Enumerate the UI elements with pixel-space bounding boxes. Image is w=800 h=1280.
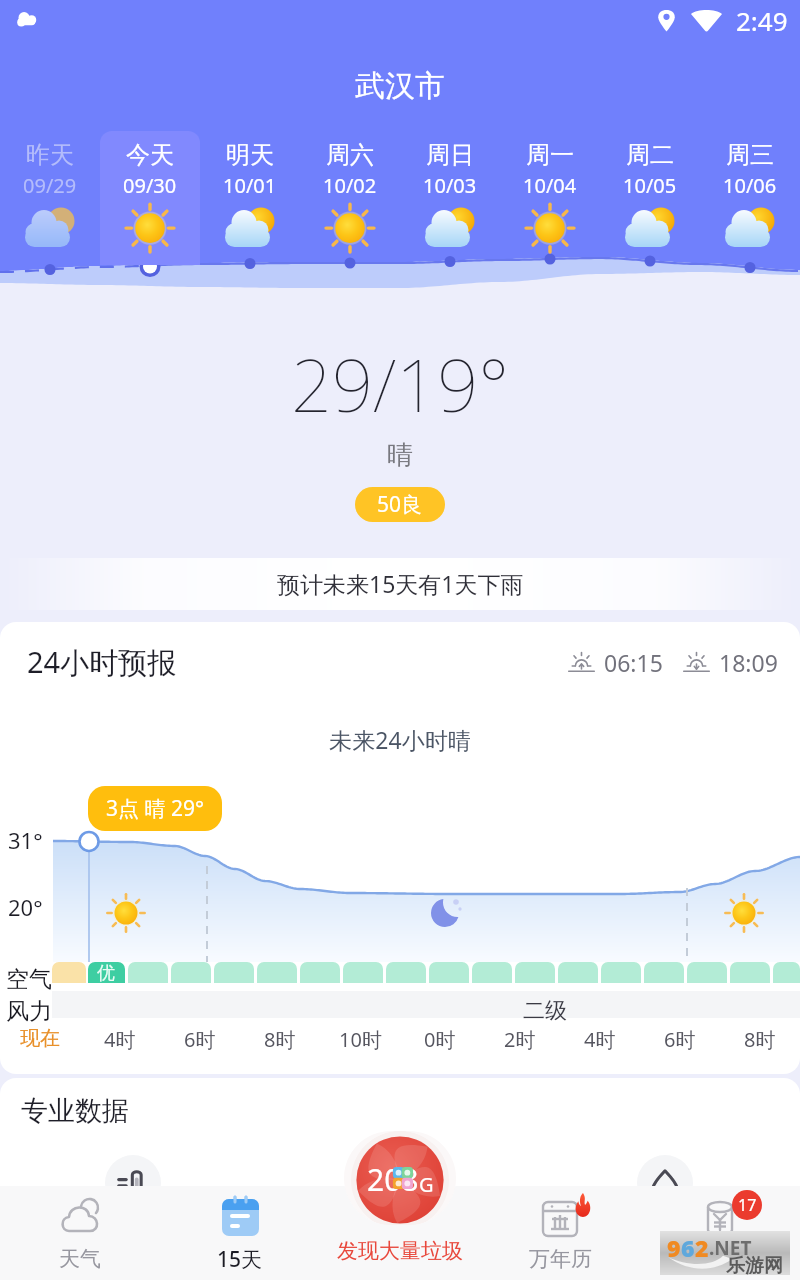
staticText: 10时	[339, 1026, 382, 1053]
staticText: 昨天	[26, 140, 74, 170]
staticText: 2时	[504, 1026, 536, 1053]
staticText: 9	[667, 1232, 681, 1263]
staticText: 24小时预报	[27, 642, 177, 682]
staticText: 天气	[59, 1246, 101, 1272]
staticText: 4时	[104, 1026, 136, 1053]
staticText: 优	[97, 962, 115, 985]
other: 天气	[55, 1194, 105, 1244]
staticText: G	[419, 1171, 434, 1198]
button[interactable]: 3点 晴 29°	[88, 786, 222, 831]
button[interactable]: Wallet	[640, 1186, 800, 1280]
staticText: 武汉市	[0, 67, 800, 105]
staticText: 万年历	[529, 1246, 592, 1272]
staticText: 周六	[326, 140, 374, 170]
staticText: 周三	[726, 140, 774, 170]
staticText: 0时	[424, 1026, 456, 1053]
staticText: 未来24小时晴	[0, 724, 800, 755]
staticText: 3点 晴 29°	[106, 794, 204, 823]
other: 万年历	[535, 1194, 585, 1244]
staticText: 09/29	[23, 172, 77, 199]
staticText: 6	[681, 1232, 695, 1263]
staticText: 晴	[387, 439, 413, 472]
other: 15天	[215, 1193, 265, 1243]
staticText: 4时	[584, 1026, 616, 1053]
button[interactable]: 万年历	[480, 1186, 640, 1280]
other: Wallet	[695, 1194, 745, 1244]
other: Wifi	[690, 4, 723, 37]
other: Location	[655, 9, 678, 32]
staticText: 8时	[744, 1026, 776, 1053]
staticText: 15天	[217, 1245, 263, 1274]
button[interactable]: 今天	[100, 131, 200, 265]
button[interactable]: 气压	[637, 1155, 693, 1211]
staticText: 6时	[664, 1026, 696, 1053]
staticText: 发现大量垃圾	[337, 1238, 463, 1264]
button[interactable]: 周二	[600, 131, 700, 265]
staticText: 二级	[523, 997, 567, 1025]
button[interactable]: 周一	[500, 131, 600, 265]
staticText: 10/02	[323, 172, 377, 199]
button[interactable]: 天气	[0, 1186, 160, 1280]
staticText: 明天	[226, 140, 274, 170]
staticText: 50良	[377, 490, 423, 519]
button[interactable]: 周六	[300, 131, 400, 265]
button[interactable]: 周三	[700, 131, 800, 265]
button[interactable]: 昨天	[0, 131, 100, 265]
button[interactable]: 周日	[400, 131, 500, 265]
staticText: 周日	[426, 140, 474, 170]
button[interactable]: 温度	[105, 1155, 161, 1211]
staticText: 预计未来15天有1天下雨	[277, 568, 524, 599]
staticText: 10/05	[623, 172, 677, 199]
staticText: 29/19°	[291, 335, 510, 433]
button[interactable]: 50良	[355, 487, 445, 522]
staticText: 208	[367, 1159, 419, 1200]
staticText: 今天	[126, 140, 174, 170]
staticText: 周二	[626, 140, 674, 170]
staticText: 6时	[184, 1026, 216, 1053]
button[interactable]: 发现大量垃圾	[344, 1131, 456, 1225]
staticText: .NET	[709, 1235, 752, 1261]
staticText: 20°	[8, 892, 43, 922]
staticText: 乐游网	[726, 1254, 783, 1278]
staticText: 09/30	[123, 172, 177, 199]
staticText: 风力	[6, 997, 52, 1026]
staticText: 专业数据	[21, 1094, 129, 1128]
staticText: 周一	[526, 140, 574, 170]
staticText: 10/01	[223, 172, 277, 199]
button[interactable]: 15天	[160, 1186, 320, 1280]
button[interactable]: 湿度	[372, 1155, 428, 1211]
staticText: 17	[738, 1194, 757, 1216]
staticText: 2	[695, 1232, 709, 1263]
staticText: 31°	[8, 825, 43, 855]
staticText: 10/03	[423, 172, 477, 199]
staticText: 空气	[6, 965, 52, 994]
button[interactable]: 明天	[200, 131, 300, 265]
staticText: 06:15	[604, 647, 663, 678]
staticText: 10/04	[523, 172, 577, 199]
staticText: 18:09	[719, 647, 778, 678]
staticText: 8时	[264, 1026, 296, 1053]
staticText: 10/06	[723, 172, 777, 199]
staticText: 现在	[20, 1026, 60, 1051]
staticText: 2:49	[736, 3, 788, 38]
